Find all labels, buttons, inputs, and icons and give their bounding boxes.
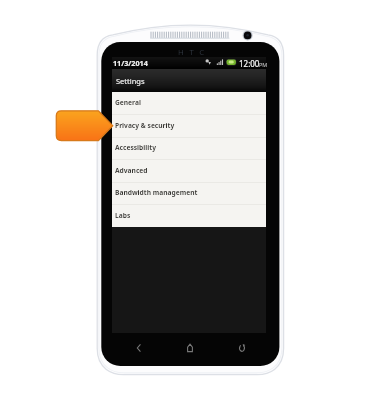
staticText: Bandwidth management [115,188,198,198]
staticText: HTC [178,47,210,58]
staticText: General [115,98,142,108]
button[interactable]: General [112,92,266,115]
staticText: Labs [115,211,131,221]
staticText: 11/3/2014 [113,58,148,68]
staticText: PM [259,61,268,68]
button[interactable]: Back [113,338,164,358]
staticText: Privacy & security [115,121,175,131]
button[interactable]: Advanced [112,160,266,183]
button[interactable]: Labs [112,205,266,228]
button[interactable]: Privacy & security [112,115,266,138]
button[interactable]: Accessibility [112,137,266,160]
staticText: 12:00 [239,58,260,69]
button[interactable]: Callout arrow pointing at Privacy & secu… [56,110,113,141]
button[interactable]: Bandwidth management [112,182,266,205]
button[interactable]: Home [164,338,216,358]
staticText: Accessibility [115,143,157,153]
staticText: Settings [116,76,145,86]
button[interactable]: Settings [112,69,266,92]
staticText: Advanced [115,166,148,176]
button[interactable]: Recent apps [216,338,268,358]
